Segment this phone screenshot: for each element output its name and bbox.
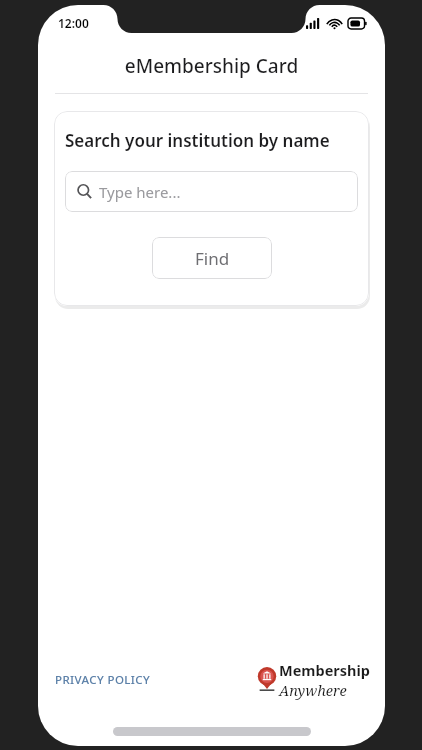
button[interactable]: Find	[152, 237, 272, 279]
staticText: Anywhere	[279, 680, 347, 700]
staticText: Search your institution by name	[65, 129, 330, 152]
button[interactable]: Type here...	[65, 171, 358, 212]
staticText: Membership	[279, 660, 370, 680]
staticText: PRIVACY POLICY	[55, 672, 151, 688]
staticText: Type here...	[99, 182, 181, 202]
other: Membership Anywhere logo	[257, 666, 277, 694]
button[interactable]: PRIVACY POLICY	[55, 668, 151, 692]
staticText: 12:00	[58, 15, 89, 31]
staticText: eMembership Card	[38, 53, 385, 79]
staticText: Find	[195, 247, 230, 270]
